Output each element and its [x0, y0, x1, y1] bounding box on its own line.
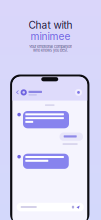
- button[interactable]: Options: [75, 89, 82, 96]
- staticText: who knows you best.: [33, 48, 68, 53]
- staticText: Your emotional companion: [29, 44, 72, 49]
- staticText: Chat with: [28, 19, 72, 31]
- staticText: minimee: [30, 30, 70, 42]
- button[interactable]: Send: [76, 206, 80, 209]
- button[interactable]: Back: [15, 89, 20, 95]
